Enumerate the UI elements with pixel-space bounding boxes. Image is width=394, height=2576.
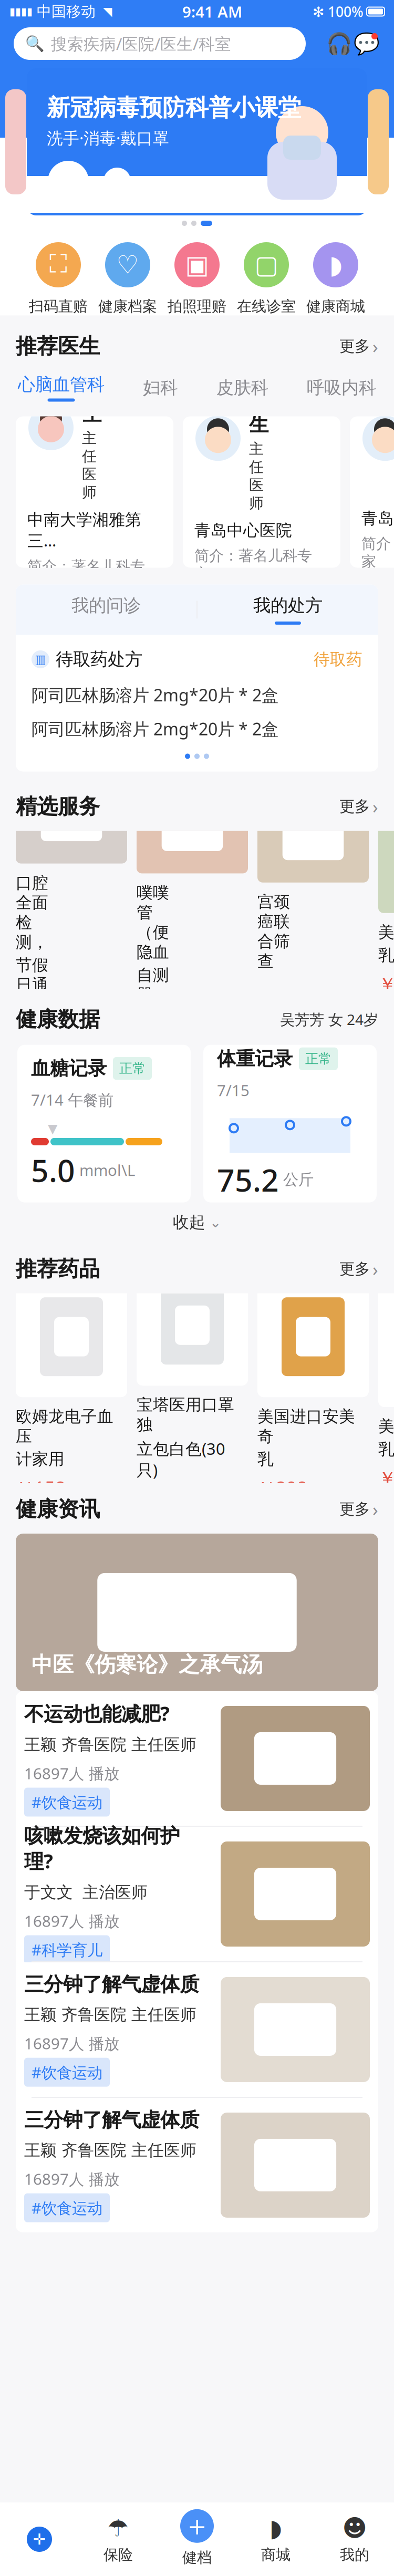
staticText: 我的 [340, 2546, 369, 2564]
button[interactable]: ▶ [16, 1534, 378, 1691]
staticText: 王颖 齐鲁医院 主任医师 [24, 1735, 196, 1755]
staticText: 更多 [339, 337, 370, 356]
staticText: 阿司匹林肠溶片 2mg*20片 * 2盒 [32, 718, 278, 740]
staticText: 9:41 AM [182, 1, 242, 22]
staticText: ⌄ [210, 1214, 221, 1230]
button[interactable]: 客服 [326, 30, 353, 57]
button[interactable]: 新冠病毒预防科普小课堂 [27, 68, 367, 215]
button[interactable]: 宝塔医用口罩独 [137, 1265, 248, 1511]
staticText: 不运动也能减肥? [24, 1700, 170, 1726]
button[interactable]: ＋ [158, 2508, 236, 2571]
staticText: ￥158 [16, 1021, 66, 1045]
button[interactable]: 更多 [339, 334, 378, 358]
button[interactable]: 口腔全面检测， [16, 774, 127, 1045]
button[interactable]: 更多 [339, 794, 378, 819]
button[interactable]: 更多 [339, 1497, 378, 1521]
button[interactable]: 王医生 [16, 416, 173, 568]
staticText: 扫码直赔 [29, 297, 88, 315]
button[interactable]: ◗ [236, 2515, 315, 2564]
staticText: 公斤 [283, 1170, 314, 1189]
button[interactable]: 呼吸内科 [307, 377, 376, 398]
staticText: 血糖记录 [31, 1057, 107, 1080]
staticText: 洗手·消毒·戴口罩 [47, 127, 169, 149]
staticText: 健档 [182, 2549, 212, 2567]
button[interactable]: 我的问诊 [16, 584, 196, 635]
staticText: 中南大学湘雅第三… [27, 510, 141, 551]
button[interactable]: 🔍 [14, 27, 306, 60]
button[interactable]: 立即咨询 [40, 603, 149, 632]
button[interactable]: 青岛 [350, 416, 394, 568]
button[interactable]: 宫颈癌联合筛查 [257, 793, 369, 1026]
button[interactable]: ▢ [232, 240, 301, 315]
staticText: 推荐医生 [16, 333, 100, 359]
staticText: 健康商城 [306, 297, 365, 315]
staticText: 王医生 [82, 354, 101, 426]
button[interactable]: ☻ [315, 2515, 394, 2564]
staticText: 三分钟了解气虚体质 [24, 2108, 199, 2132]
button[interactable]: 更多 [339, 1257, 378, 1281]
button[interactable]: 不运动也能减肥? [16, 1691, 378, 1826]
staticText: 16897人 播放 [24, 2033, 119, 2054]
staticText: ☻ [342, 2515, 367, 2542]
staticText: 王颖 齐鲁医院 主任医师 [24, 2005, 196, 2025]
button[interactable]: 妇科 [143, 377, 178, 398]
button[interactable]: 我的处方 [198, 584, 378, 635]
staticText: 青岛中心医院 [194, 521, 292, 540]
button[interactable]: 健康 [0, 2526, 79, 2553]
staticText: 健康数据 [16, 1006, 100, 1032]
button[interactable]: 美 [378, 824, 394, 996]
staticText: 乳 [378, 945, 394, 965]
staticText: 青岛中心医院 [361, 509, 394, 528]
button[interactable]: 皮肤科 [216, 377, 268, 398]
button[interactable]: 噗噗管（便隐血 [137, 784, 248, 1035]
button[interactable]: 美国进口安美奇 [257, 1276, 369, 1500]
button[interactable]: 美 [378, 1286, 394, 1490]
staticText: 简介：著名儿科专家 [361, 535, 394, 571]
button[interactable]: ▣ [162, 240, 232, 315]
staticText: 保险 [103, 2546, 133, 2564]
staticText: ▥ [34, 652, 46, 666]
button[interactable]: 三分钟了解气虚体质 [16, 1962, 378, 2097]
staticText: 三分钟了解气虚体质 [24, 1972, 199, 1997]
button[interactable]: ◗ [301, 240, 370, 315]
staticText: 李医生 [249, 364, 268, 437]
button[interactable]: 咳嗽发烧该如何护理? [16, 1827, 378, 1961]
button[interactable]: 收起 [173, 1207, 221, 1238]
staticText: #饮食运动 [32, 1792, 102, 1812]
button[interactable]: ⛶ [24, 240, 93, 315]
button[interactable]: 体重记录 [203, 1045, 377, 1202]
staticText: 宝塔医用口罩独 [137, 1395, 234, 1435]
staticText: 口腔全面检测， [16, 873, 48, 952]
staticText: 搜索疾病/医院/医生/科室 [51, 33, 231, 54]
staticText: 美国进口安美奇 [257, 1407, 355, 1446]
staticText: 立即咨询 [227, 596, 296, 618]
button[interactable]: 消息 [353, 30, 380, 57]
staticText: ￥298 [257, 1475, 307, 1500]
staticText: 立包白色(30只) [137, 1438, 225, 1481]
button[interactable]: 三分钟了解气虚体质 [16, 2098, 378, 2232]
button[interactable]: ♡ [93, 240, 162, 315]
staticText: ◗ [269, 2515, 282, 2542]
staticText: 🎧 [326, 32, 352, 56]
staticText: ▼ [48, 1122, 57, 1136]
staticText: 阿司匹林肠溶片 2mg*20片 * 2盒 [32, 684, 278, 706]
staticText: 7/14 午餐前 [31, 1090, 113, 1110]
staticText: 我的问诊 [71, 595, 141, 616]
button[interactable]: 心脑血管科 [18, 374, 105, 402]
staticText: 收起 [173, 1213, 205, 1232]
button[interactable]: 立即咨询 [207, 592, 316, 622]
button[interactable]: ☂ [79, 2515, 158, 2564]
staticText: ✻ 100% [313, 2, 364, 21]
staticText: 妇科 [143, 377, 178, 398]
button[interactable]: 血糖记录 [17, 1045, 191, 1202]
staticText: 正常 [119, 1060, 146, 1077]
staticText: 5.0 [31, 1150, 75, 1190]
button[interactable]: 欧姆龙电子血压 [16, 1276, 127, 1500]
staticText: #饮食运动 [32, 2062, 102, 2082]
staticText: 主任医师 [249, 440, 264, 512]
staticText: 呼吸内科 [307, 377, 376, 398]
staticText: 75.2 [217, 1159, 279, 1200]
button[interactable]: 李医生 [183, 416, 340, 568]
